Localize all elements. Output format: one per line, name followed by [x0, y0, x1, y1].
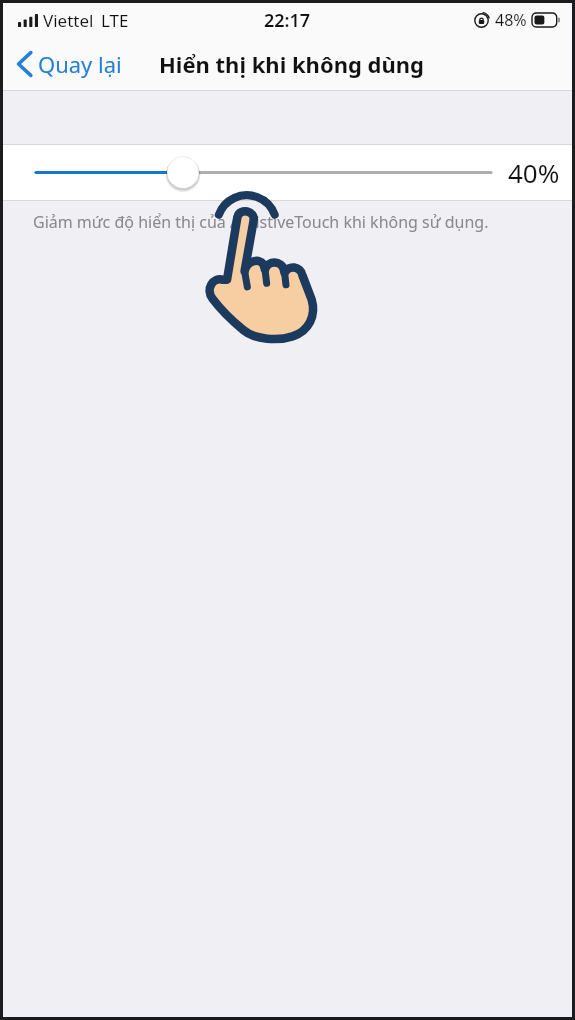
staticText: Hiển thị khi không dùng	[159, 49, 424, 79]
staticText: LTE	[101, 9, 129, 32]
staticText: 48%	[495, 9, 527, 31]
staticText: Giảm mức độ hiển thị của AssistiveTouch …	[33, 211, 489, 233]
other: Độ mờ nhàn rỗi 40 phần trăm	[33, 145, 493, 200]
button[interactable]: Độ mờ nhàn rỗi 40 phần trăm	[3, 145, 572, 200]
staticText: 22:17	[264, 8, 311, 33]
button[interactable]: Quay lại	[3, 43, 132, 85]
staticText: Quay lại	[38, 49, 122, 79]
staticText: 40%	[508, 155, 560, 190]
staticText: Viettel	[43, 9, 94, 32]
